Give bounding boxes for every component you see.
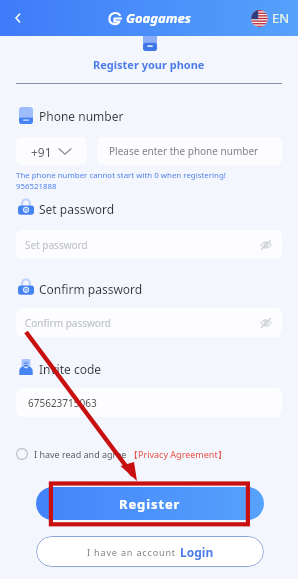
staticText: 956521888 — [16, 181, 57, 192]
button[interactable]: Set password — [16, 230, 282, 259]
button[interactable]: 675623715063 — [16, 388, 282, 417]
staticText: Set password — [25, 238, 88, 252]
staticText: I have an account — [87, 546, 176, 558]
button[interactable]: Back — [6, 6, 30, 30]
staticText: EN — [272, 9, 290, 27]
button[interactable]: Show password — [259, 316, 273, 330]
staticText: +91 — [31, 144, 52, 160]
staticText: The phone number cannot start with 0 whe… — [16, 170, 226, 181]
staticText: 675623715063 — [28, 396, 97, 410]
button[interactable]: Please enter the phone number — [97, 137, 282, 165]
button[interactable]: I have read and agree — [16, 446, 227, 462]
button[interactable]: Register — [36, 487, 264, 520]
staticText: Set password — [39, 201, 115, 217]
button[interactable]: I have an account — [36, 536, 264, 567]
staticText: Register — [119, 495, 181, 513]
staticText: Confirm password — [25, 316, 111, 330]
staticText: Confirm password — [39, 281, 143, 297]
staticText: Please enter the phone number — [109, 144, 259, 158]
button[interactable]: Show password — [259, 238, 273, 252]
staticText: Invite code — [39, 361, 102, 377]
button[interactable]: EN — [251, 9, 290, 27]
button[interactable]: Confirm password — [16, 308, 282, 337]
staticText: Phone number — [39, 108, 124, 124]
staticText: 【Privacy Agreement】 — [129, 448, 227, 460]
staticText: I have read and agree — [34, 448, 127, 460]
button[interactable]: +91 — [16, 137, 87, 165]
staticText: Register your phone — [93, 57, 205, 72]
staticText: Goagames — [126, 9, 191, 27]
staticText: Login — [180, 544, 214, 560]
